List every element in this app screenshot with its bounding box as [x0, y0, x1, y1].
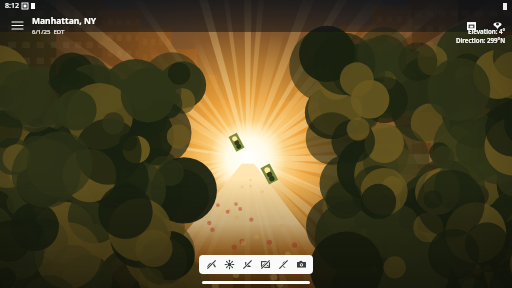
button[interactable]: Toggle sun path — [202, 255, 220, 274]
button[interactable]: Toggle moon path — [274, 255, 292, 274]
button[interactable]: Change location — [487, 15, 507, 35]
button[interactable]: Open camera — [292, 255, 310, 274]
staticText: Manhattan, NY — [32, 15, 97, 27]
staticText: 6/1/25 EDT — [32, 28, 65, 36]
button[interactable]: Toggle shadows — [238, 255, 256, 274]
staticText: 8:12 — [5, 1, 19, 11]
staticText: Elevation: 4° — [468, 27, 506, 35]
button[interactable]: Toggle map overlay — [256, 255, 274, 274]
button[interactable]: Pick date — [461, 15, 481, 35]
button[interactable]: Open navigation menu — [6, 14, 28, 36]
button[interactable]: Toggle sun position — [220, 255, 238, 274]
staticText: Direction: 299°N — [456, 36, 506, 44]
